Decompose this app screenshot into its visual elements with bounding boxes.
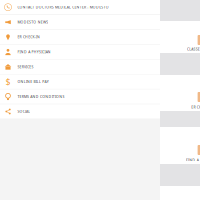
button[interactable]: MODESTO NEWS xyxy=(0,15,160,30)
button[interactable]: CONTACT DOCTORS MEDICAL CENTER - MODESTO xyxy=(0,0,160,15)
button[interactable]: SERVICES xyxy=(0,60,160,74)
button[interactable]: ER CHECK-IN xyxy=(0,30,160,45)
staticText: SOCIAL xyxy=(17,109,30,114)
staticText: CLASSES xyxy=(187,47,200,51)
button[interactable]: SOCIAL xyxy=(0,104,160,119)
button[interactable]: CLASSES xyxy=(160,21,200,53)
staticText: TERMS AND CONDITIONS xyxy=(17,94,64,99)
staticText: SERVICES xyxy=(17,64,33,69)
button[interactable]: $ xyxy=(0,74,160,89)
staticText: FIND A P xyxy=(186,158,200,162)
staticText: FIND A PHYSICIAN xyxy=(17,49,51,54)
staticText: ER CH xyxy=(191,105,200,109)
button[interactable]: FIND A P xyxy=(160,127,200,164)
button[interactable]: TERMS AND CONDITIONS xyxy=(0,89,160,104)
button[interactable]: FIND A PHYSICIAN xyxy=(0,45,160,60)
staticText: MODESTO NEWS xyxy=(17,20,48,24)
staticText: $ xyxy=(5,76,10,88)
staticText: ONLINE BILL PAY xyxy=(17,79,49,84)
staticText: ER CHECK-IN xyxy=(17,35,40,39)
staticText: CONTACT DOCTORS MEDICAL CENTER - MODESTO xyxy=(17,5,109,9)
button[interactable]: ER CH xyxy=(160,75,200,111)
